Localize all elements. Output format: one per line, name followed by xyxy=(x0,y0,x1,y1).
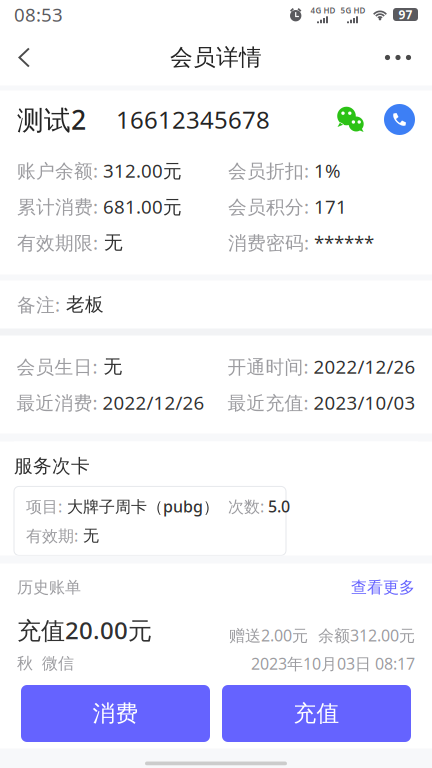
staticText: 备注: xyxy=(17,292,60,317)
staticText: 08:53 xyxy=(14,2,63,27)
staticText: 最近消费: xyxy=(16,390,97,415)
staticText: 681.00元 xyxy=(98,194,182,219)
staticText: 秋 xyxy=(17,654,33,673)
button[interactable]: WeChat xyxy=(336,106,366,133)
staticText: 次数: xyxy=(228,496,264,517)
staticText: 老板 xyxy=(60,293,104,316)
staticText: 余额312.00元 xyxy=(318,625,415,646)
button[interactable]: 充值 xyxy=(222,685,411,742)
button[interactable]: Call xyxy=(384,104,415,135)
staticText: 账户余额: xyxy=(17,158,98,183)
staticText: 2022/12/26 xyxy=(308,354,415,379)
staticText: 查看更多 xyxy=(351,578,415,597)
staticText: ****** xyxy=(309,230,374,255)
staticText: 测试2 xyxy=(17,102,86,137)
staticText: 会员积分: xyxy=(228,194,309,219)
staticText: 会员折扣: xyxy=(228,158,309,183)
staticText: 大牌子周卡（pubg） xyxy=(62,496,219,517)
staticText: 4G HD xyxy=(310,5,335,16)
staticText: 项目: xyxy=(26,496,62,517)
staticText: 充值 xyxy=(293,700,339,727)
staticText: 微信 xyxy=(42,654,74,673)
staticText: 有效期限: xyxy=(17,230,98,255)
staticText: 最近充值: xyxy=(227,390,308,415)
staticText: 5.0 xyxy=(264,496,290,517)
staticText: 赠送2.00元 xyxy=(229,625,308,646)
staticText: 312.00元 xyxy=(98,158,182,183)
staticText: 历史账单 xyxy=(17,578,81,597)
staticText: 171 xyxy=(309,194,347,219)
staticText: 开通时间: xyxy=(227,354,308,379)
staticText: 2023/10/03 xyxy=(308,390,415,415)
button[interactable]: 查看更多 xyxy=(351,578,415,597)
staticText: 消费 xyxy=(92,700,138,727)
staticText: 16612345678 xyxy=(116,104,270,135)
staticText: 有效期: xyxy=(26,525,78,546)
staticText: 5G HD xyxy=(340,5,365,16)
staticText: 无 xyxy=(98,231,123,254)
staticText: 97 xyxy=(398,6,412,22)
staticText: 无 xyxy=(78,526,99,545)
staticText: 会员生日: xyxy=(16,354,97,379)
staticText: 充值20.00元 xyxy=(17,614,152,646)
staticText: 累计消费: xyxy=(17,194,98,219)
button[interactable]: Back xyxy=(15,36,49,78)
staticText: 1% xyxy=(309,158,341,183)
staticText: 2022/12/26 xyxy=(97,390,204,415)
staticText: 会员详情 xyxy=(170,44,262,71)
staticText: 消费密码: xyxy=(228,230,309,255)
button[interactable]: More xyxy=(383,36,417,78)
button[interactable]: 消费 xyxy=(21,685,210,742)
staticText: 服务次卡 xyxy=(14,454,90,477)
staticText: 2023年10月03日 08:17 xyxy=(251,653,415,674)
staticText: 无 xyxy=(97,355,122,378)
